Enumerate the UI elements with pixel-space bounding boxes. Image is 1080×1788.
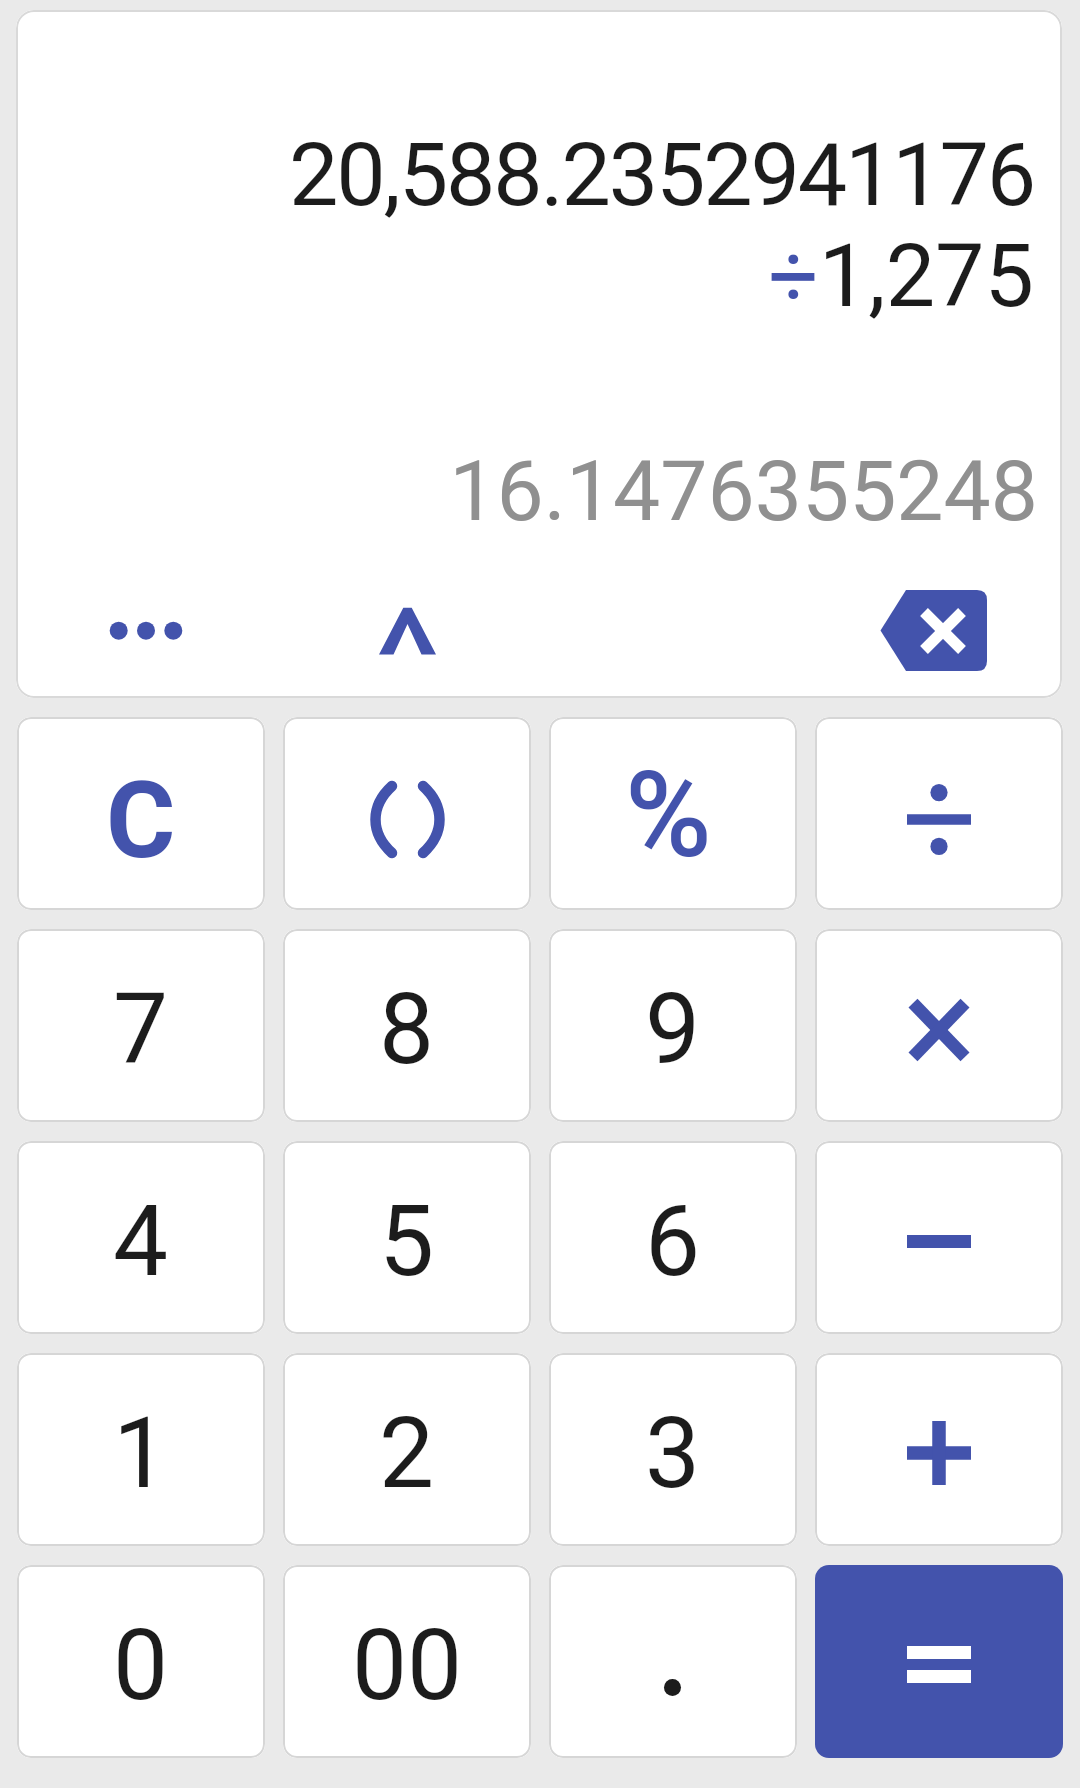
staticText: 3 <box>645 1396 701 1511</box>
button[interactable] <box>815 1565 1063 1758</box>
button[interactable] <box>815 1353 1063 1546</box>
button[interactable] <box>815 1141 1063 1334</box>
staticText: 5 <box>379 1184 435 1299</box>
button[interactable] <box>815 717 1063 910</box>
button[interactable]: 00 <box>283 1565 531 1758</box>
button[interactable] <box>379 607 436 655</box>
staticText: 9 <box>645 972 701 1087</box>
button[interactable]: 8 <box>283 929 531 1122</box>
staticText: 7 <box>113 972 169 1087</box>
staticText: 0 <box>113 1608 169 1723</box>
button[interactable]: 4 <box>17 1141 265 1334</box>
staticText: C <box>106 759 176 883</box>
button[interactable] <box>877 589 988 672</box>
staticText: 4 <box>113 1184 169 1299</box>
staticText: % <box>625 747 712 885</box>
staticText: 20,588.2352941176 <box>289 123 1034 226</box>
button[interactable]: C <box>17 717 265 910</box>
button[interactable]: 6 <box>549 1141 797 1334</box>
button[interactable]: 9 <box>549 929 797 1122</box>
button[interactable]: 0 <box>17 1565 265 1758</box>
button[interactable] <box>104 616 188 646</box>
staticText: 00 <box>352 1608 463 1723</box>
button[interactable]: % <box>549 717 797 910</box>
staticText: 8 <box>379 972 435 1087</box>
staticText: 2 <box>379 1396 435 1511</box>
button[interactable]: 1 <box>17 1353 265 1546</box>
button[interactable] <box>549 1565 797 1758</box>
button[interactable] <box>283 717 531 910</box>
staticText: 6 <box>645 1184 701 1299</box>
button[interactable]: 7 <box>17 929 265 1122</box>
button[interactable]: 3 <box>549 1353 797 1546</box>
button[interactable]: 5 <box>283 1141 531 1334</box>
button[interactable]: 2 <box>283 1353 531 1546</box>
button[interactable] <box>815 929 1063 1122</box>
staticText: 1 <box>113 1396 169 1511</box>
staticText: 16.1476355248 <box>449 442 1038 540</box>
staticText: ÷1,275 <box>768 224 1034 327</box>
